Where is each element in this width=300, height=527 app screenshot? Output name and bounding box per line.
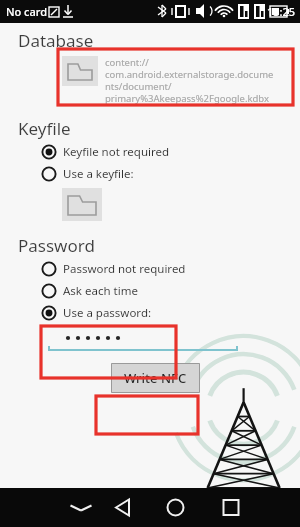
button[interactable]: Choose file xyxy=(62,188,102,221)
staticText: Keyfile xyxy=(18,117,71,140)
staticText: 15:25 xyxy=(267,4,296,19)
staticText: Write NFC xyxy=(124,369,187,387)
button[interactable]: Ask each time xyxy=(41,283,138,299)
button[interactable]: Keyfile not required xyxy=(41,144,170,160)
staticText: Password xyxy=(18,234,95,257)
staticText: Use a password: xyxy=(63,305,152,321)
staticText: Keyfile not required xyxy=(63,144,170,160)
staticText: No card xyxy=(6,4,48,19)
button[interactable]: Choose file xyxy=(62,56,98,86)
staticText: Password not required xyxy=(63,261,186,277)
button[interactable]: Write NFC xyxy=(111,363,200,393)
staticText: Use a keyfile: xyxy=(63,166,134,182)
staticText: content:// com.android.externalstorage.d… xyxy=(105,56,274,105)
button[interactable]: Choose file xyxy=(62,56,274,105)
button[interactable]: Use a password: xyxy=(41,305,152,321)
staticText: Ask each time xyxy=(63,283,138,299)
button[interactable]: Use a keyfile: xyxy=(41,166,134,182)
staticText: Database xyxy=(18,29,94,52)
button[interactable]: Password not required xyxy=(41,261,186,277)
